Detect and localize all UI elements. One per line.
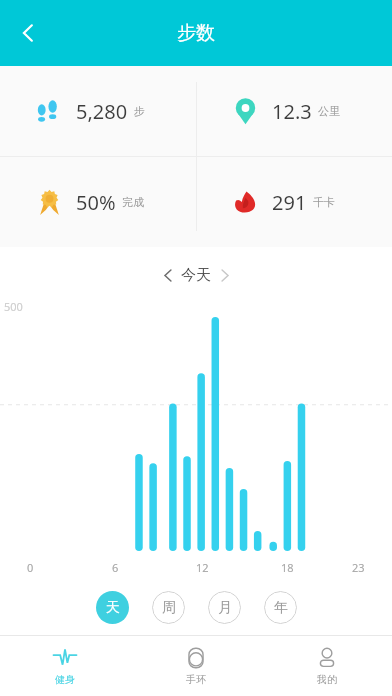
staticText: 23: [352, 560, 365, 575]
staticText: 天: [106, 599, 120, 617]
staticText: 公里: [318, 104, 340, 118]
staticText: 健身: [55, 673, 75, 686]
staticText: 周: [162, 599, 176, 617]
button[interactable]: 天: [96, 591, 129, 624]
button[interactable]: Back: [4, 9, 52, 57]
staticText: 手环: [186, 673, 206, 686]
button[interactable]: 健身: [0, 636, 130, 696]
button[interactable]: Previous day: [155, 262, 181, 288]
staticText: 18: [281, 560, 294, 575]
button[interactable]: 月: [208, 591, 241, 624]
button[interactable]: 我的: [261, 636, 392, 696]
button[interactable]: 手环: [130, 636, 261, 696]
staticText: 步: [134, 104, 145, 118]
staticText: 12: [196, 560, 209, 575]
staticText: 5,280: [76, 98, 128, 125]
staticText: 千卡: [313, 195, 335, 209]
staticText: 6: [112, 560, 119, 575]
staticText: 50%: [76, 189, 116, 216]
staticText: 我的: [317, 673, 337, 686]
button[interactable]: 周: [152, 591, 185, 624]
button[interactable]: Next day: [211, 262, 237, 288]
button[interactable]: 年: [264, 591, 297, 624]
staticText: 291: [272, 189, 307, 216]
button[interactable]: 5,280: [0, 66, 196, 156]
staticText: 12.3: [272, 98, 312, 125]
button[interactable]: 50%: [0, 157, 196, 247]
staticText: 500: [4, 299, 23, 314]
button[interactable]: 今天: [181, 266, 211, 285]
staticText: 完成: [122, 195, 144, 209]
staticText: 月: [218, 599, 232, 617]
staticText: 步数: [177, 21, 215, 45]
staticText: 0: [27, 560, 34, 575]
staticText: 年: [274, 599, 288, 617]
button[interactable]: 12.3: [196, 66, 392, 156]
button[interactable]: 291: [196, 157, 392, 247]
